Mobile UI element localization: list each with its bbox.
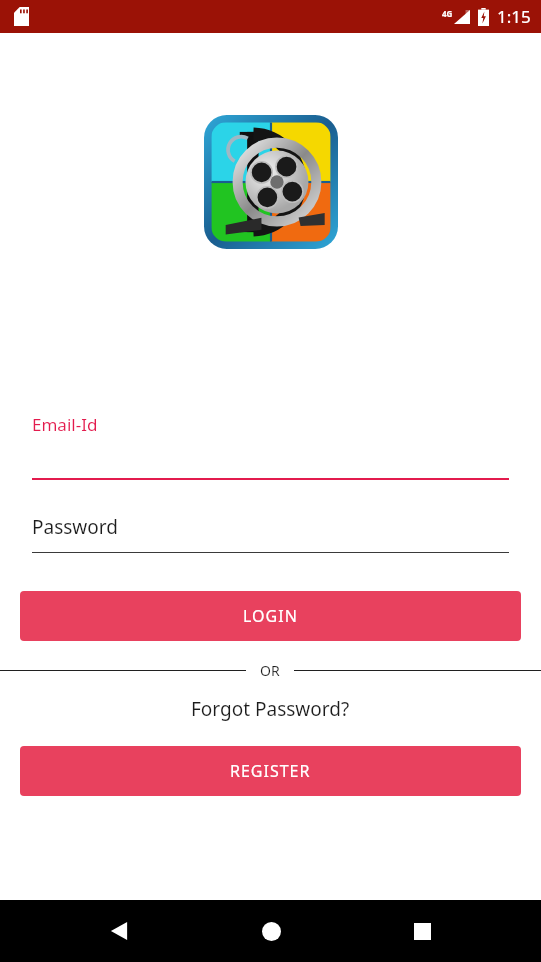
button[interactable]: Home: [239, 900, 303, 962]
staticText: OR: [260, 661, 280, 680]
staticText: REGISTER: [230, 760, 311, 782]
staticText: Forgot Password?: [191, 696, 350, 722]
staticText: 4G: [442, 8, 453, 19]
button[interactable]: LOGIN: [20, 591, 521, 641]
staticText: Email-Id: [32, 413, 98, 436]
staticText: 1:15: [497, 5, 531, 28]
button[interactable]: Forgot Password?: [0, 696, 541, 722]
button[interactable]: REGISTER: [20, 746, 521, 796]
staticText: Password: [32, 514, 118, 540]
staticText: LOGIN: [243, 605, 298, 627]
button[interactable]: Back: [87, 900, 151, 962]
button[interactable]: Recent apps: [390, 900, 454, 962]
